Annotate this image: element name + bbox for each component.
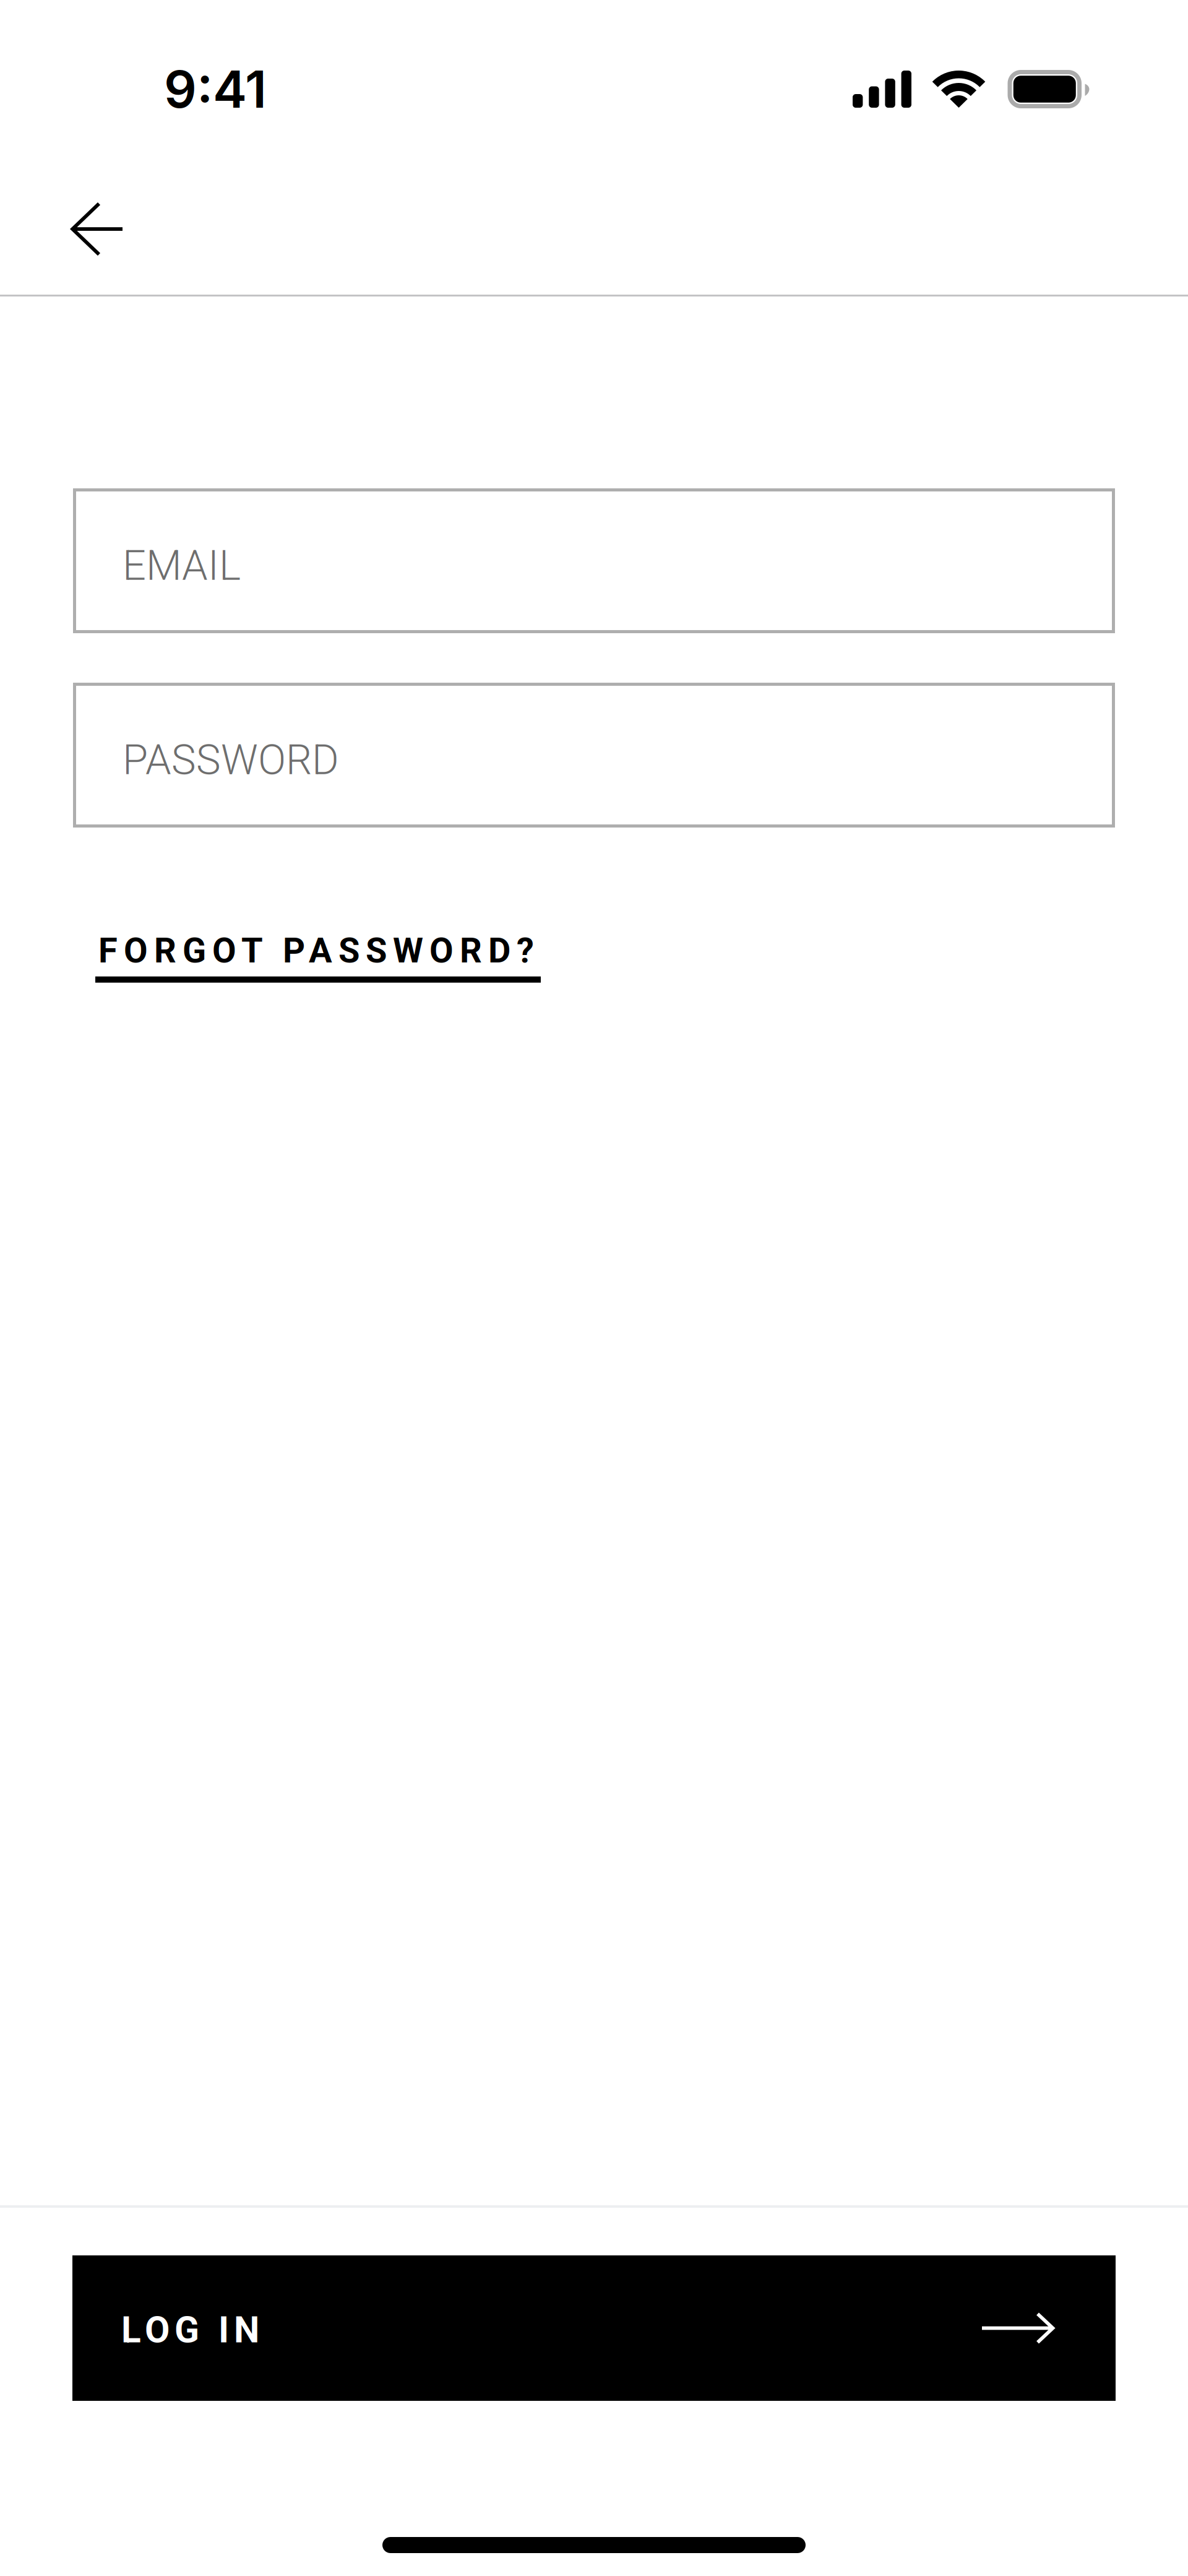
staticText: PASSWORD [123, 736, 339, 784]
button[interactable]: PASSWORD [73, 683, 1115, 828]
button[interactable]: LOG IN [72, 2255, 1116, 2401]
staticText: FORGOT PASSWORD? [98, 930, 534, 971]
button[interactable]: Back [0, 155, 153, 295]
staticText: EMAIL [123, 542, 241, 590]
button[interactable]: EMAIL [73, 488, 1115, 633]
staticText: 9:41 [164, 58, 267, 120]
button[interactable]: FORGOT PASSWORD? [95, 930, 541, 983]
staticText: LOG IN [121, 2309, 259, 2351]
